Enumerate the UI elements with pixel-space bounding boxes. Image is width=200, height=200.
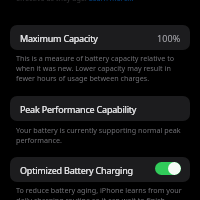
staticText: To reduce battery aging, iPhone learns f… — [16, 185, 187, 200]
button[interactable]: Optimized Battery Charging, on — [155, 162, 181, 175]
button[interactable]: Maximum Capacity — [10, 25, 190, 50]
staticText: Maximum Capacity — [20, 32, 98, 44]
button[interactable]: effective as they age. Learn more... — [16, 0, 134, 3]
button[interactable]: Peak Performance Capability — [10, 96, 190, 121]
button[interactable]: Optimized Battery Charging — [10, 157, 190, 182]
staticText: Peak Performance Capability — [20, 103, 137, 115]
staticText: Optimized Battery Charging — [20, 164, 133, 176]
staticText: Your battery is currently supporting nor… — [16, 125, 187, 145]
staticText: 100% — [157, 32, 181, 44]
staticText: This is a measure of battery capacity re… — [16, 53, 187, 83]
